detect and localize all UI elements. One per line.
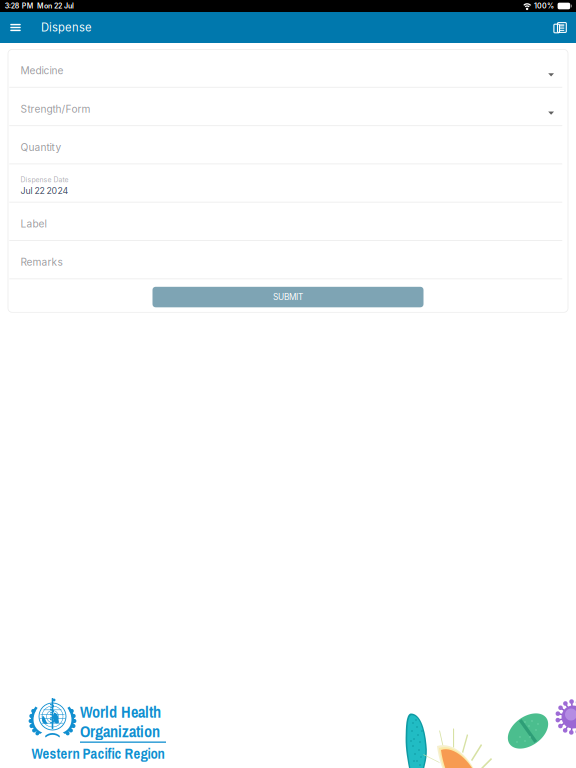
staticText: Quantity	[21, 141, 62, 153]
staticText: World Health	[80, 701, 161, 723]
staticText: Remarks	[21, 256, 63, 268]
staticText: Strength/Form	[21, 103, 91, 115]
staticText: 3:28 PM	[5, 2, 34, 10]
staticText: SUBMIT	[273, 292, 303, 302]
button[interactable]: Remarks	[8, 241, 568, 278]
staticText: Jul 22 2024	[21, 185, 69, 196]
button[interactable]: Reports	[543, 12, 576, 43]
staticText: 100%	[534, 2, 554, 10]
button[interactable]: Strength/Form	[8, 88, 568, 125]
staticText: Medicine	[21, 64, 64, 77]
button[interactable]: Menu	[0, 12, 31, 43]
button[interactable]: Dispense Date	[8, 164, 568, 202]
staticText: Organization	[80, 720, 160, 742]
staticText: Dispense	[41, 21, 92, 34]
button[interactable]: Medicine	[8, 49, 568, 87]
staticText: Mon 22 Jul	[37, 2, 74, 10]
staticText: Label	[21, 218, 47, 230]
button[interactable]: Quantity	[8, 126, 568, 163]
button[interactable]: Label	[8, 203, 568, 240]
staticText: Dispense Date	[21, 175, 69, 184]
button[interactable]: SUBMIT	[152, 287, 423, 307]
staticText: Western Pacific Region	[31, 743, 164, 763]
